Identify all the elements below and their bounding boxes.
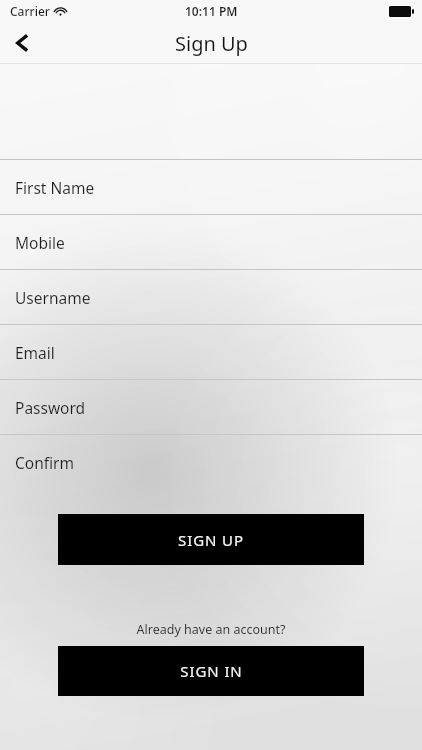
- button[interactable]: First Name: [0, 160, 422, 214]
- staticText: Carrier: [10, 3, 50, 19]
- button[interactable]: Email: [0, 325, 422, 379]
- staticText: SIGN UP: [178, 530, 244, 550]
- staticText: First Name: [15, 177, 95, 198]
- staticText: Confirm: [15, 452, 74, 473]
- button[interactable]: SIGN IN: [58, 646, 364, 696]
- staticText: Already have an account?: [0, 621, 422, 638]
- staticText: Email: [15, 342, 55, 363]
- staticText: Password: [15, 397, 86, 418]
- button[interactable]: Username: [0, 270, 422, 324]
- button[interactable]: SIGN UP: [58, 514, 364, 565]
- staticText: Mobile: [15, 232, 65, 253]
- staticText: Sign Up: [175, 30, 248, 57]
- button[interactable]: Confirm: [0, 435, 422, 489]
- button[interactable]: Mobile: [0, 215, 422, 269]
- staticText: Username: [15, 287, 91, 308]
- staticText: SIGN IN: [180, 661, 243, 681]
- button[interactable]: Password: [0, 380, 422, 434]
- staticText: 10:11 PM: [185, 3, 238, 19]
- button[interactable]: Back: [0, 22, 44, 64]
